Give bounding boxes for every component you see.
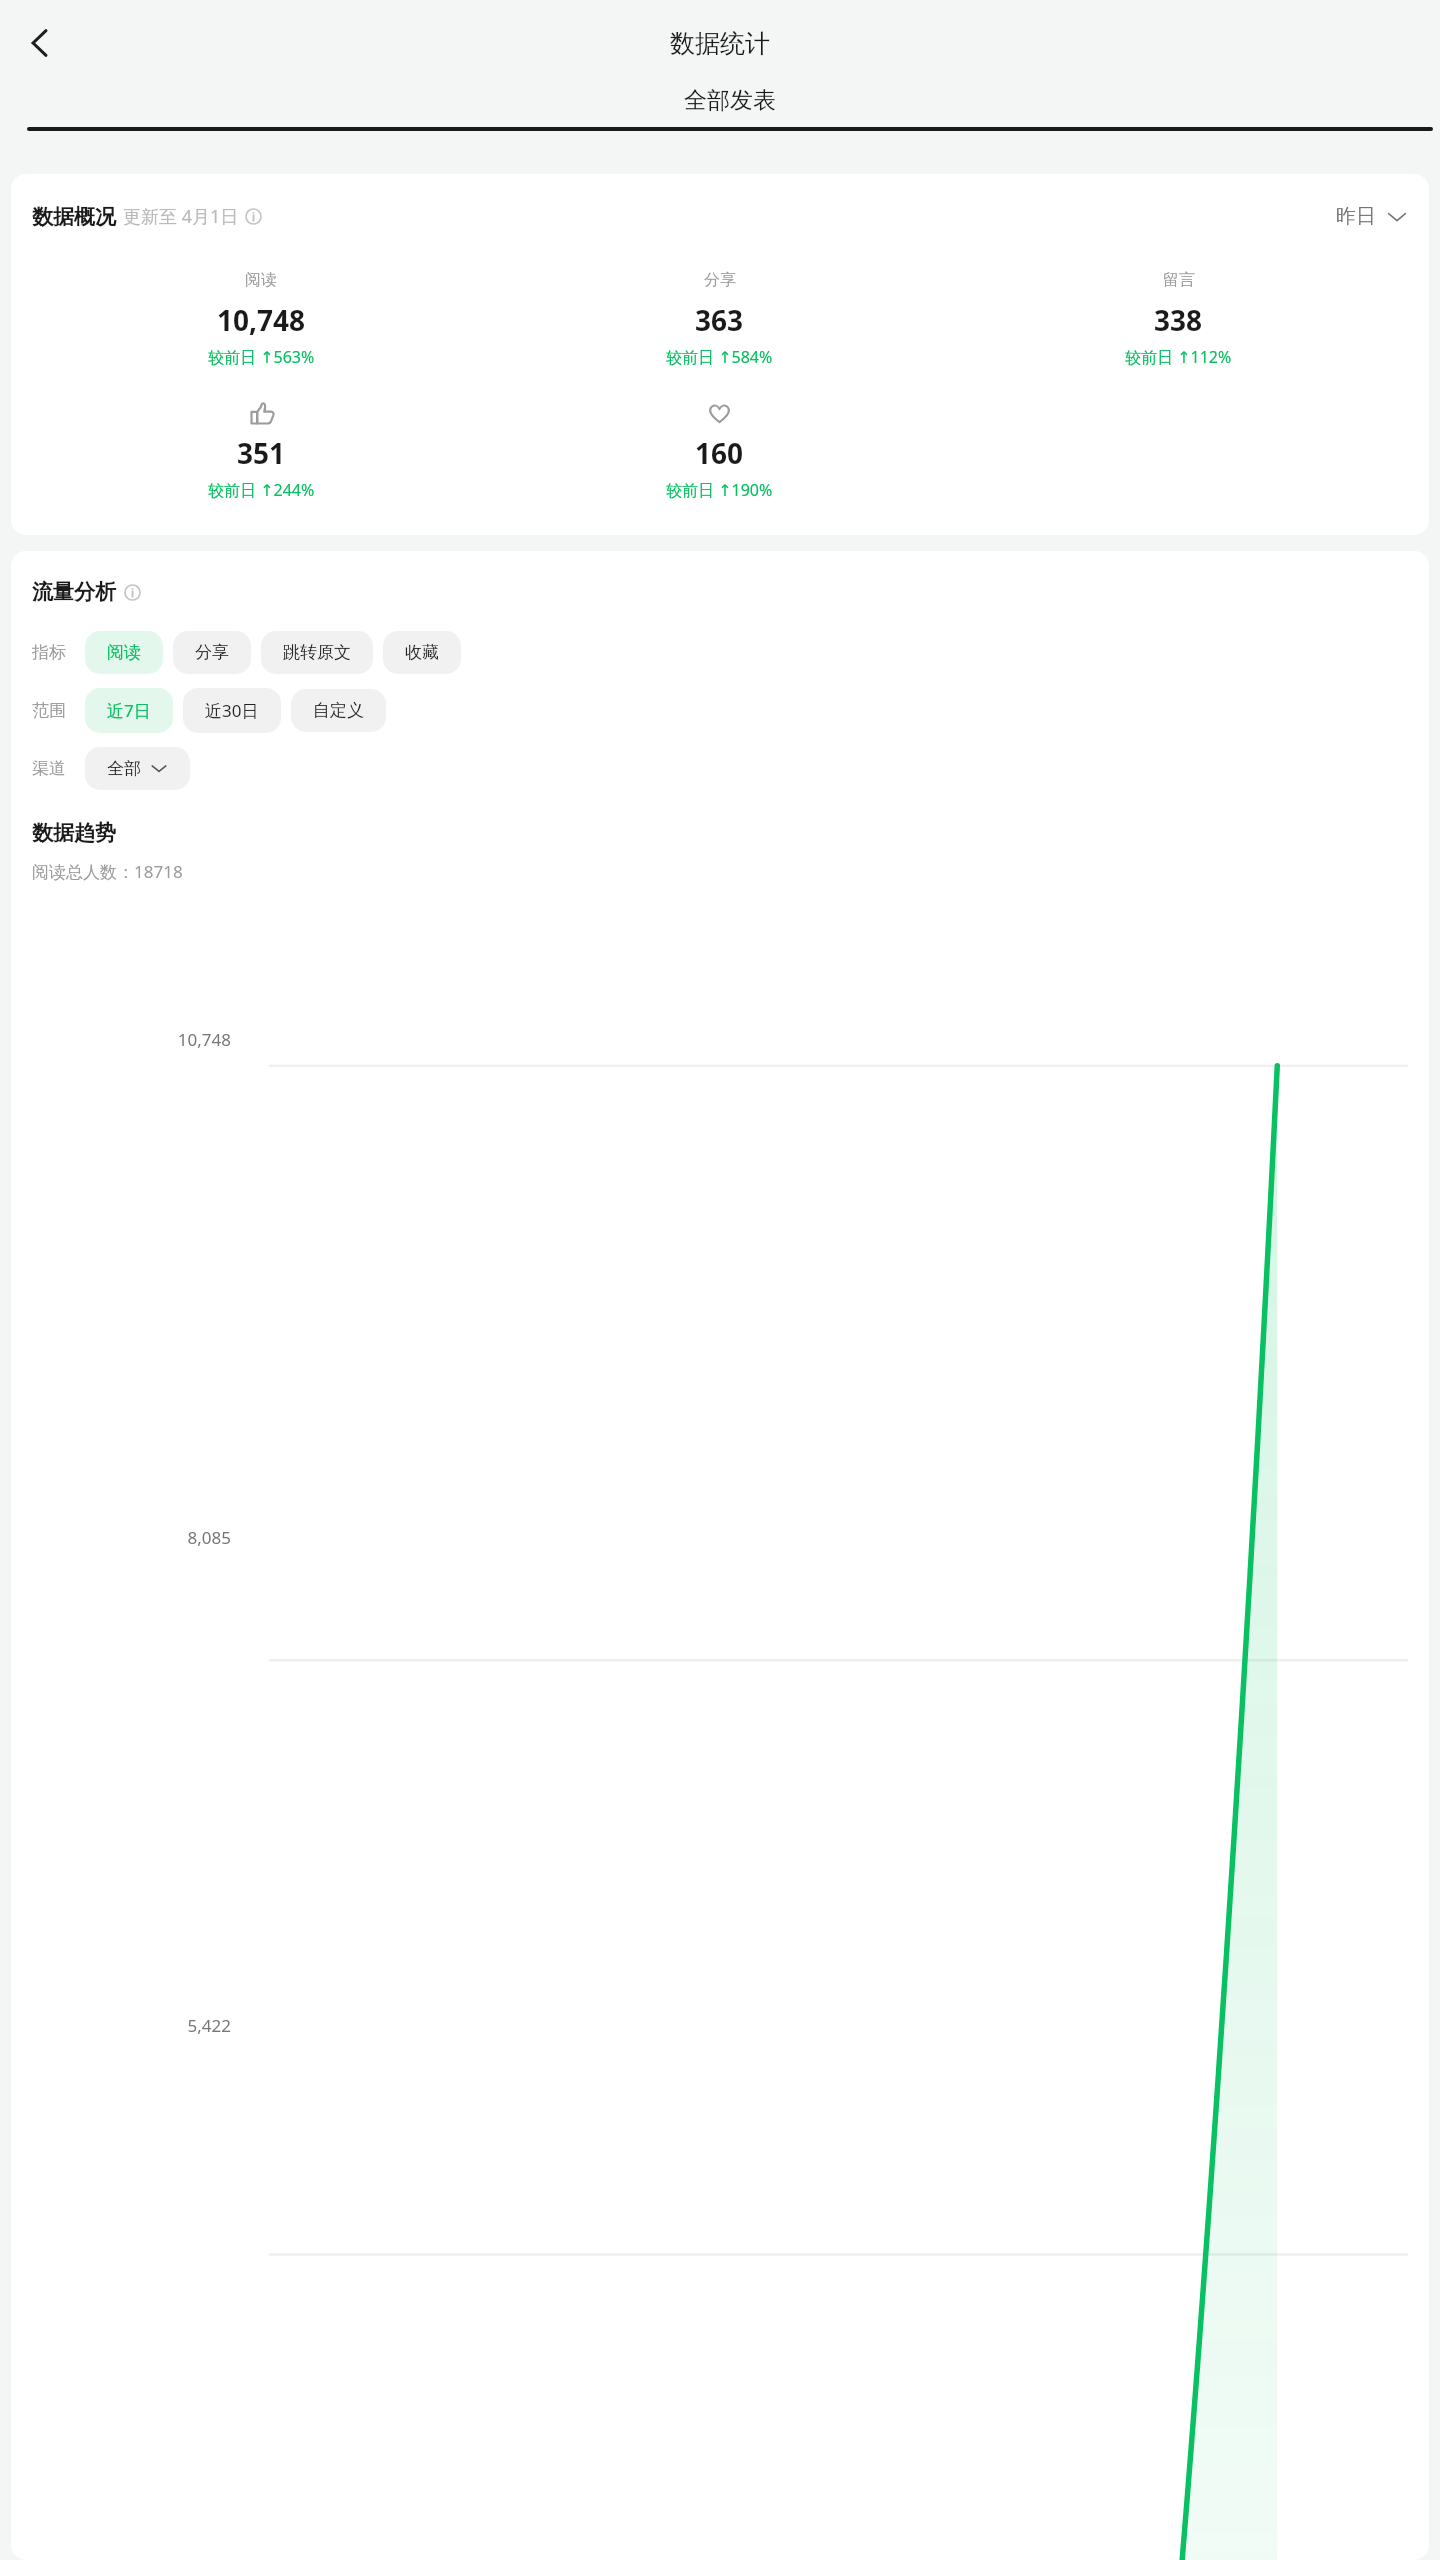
staticText: 昨日 [1336,204,1376,229]
staticText: 数据概况 [32,204,116,230]
staticText: 10,748 [32,1028,231,1051]
button[interactable]: 近30日 [183,688,281,733]
staticText: 流量分析 [32,579,116,605]
staticText: 338 [1154,301,1203,339]
button[interactable]: 分享 [490,265,949,368]
staticText: 较前日 ↑584% [666,346,773,368]
button[interactable]: 全部发表 [20,86,1440,131]
staticText: 全部发表 [684,86,776,115]
staticText: 较前日 ↑563% [208,346,315,368]
staticText: 收藏 [405,642,439,663]
staticText: 范围 [32,700,66,721]
staticText: 数据统计 [670,28,770,59]
staticText: 较前日 ↑112% [1125,346,1232,368]
button[interactable]: 分享 [173,631,251,674]
button[interactable]: 收藏 [383,631,461,674]
staticText: 近30日 [205,699,259,722]
staticText: 指标 [32,642,66,663]
staticText: 较前日 ↑190% [666,479,773,501]
button[interactable]: Back [8,11,72,75]
staticText: 351 [237,434,286,472]
button[interactable]: 阅读 [85,631,163,674]
staticText: 363 [695,301,744,339]
staticText: 阅读 [107,642,141,663]
staticText: 160 [695,434,744,472]
button[interactable]: 160 [490,398,949,501]
staticText: 阅读总人数：18718 [32,860,183,883]
staticText: 数据趋势 [32,820,116,846]
staticText: 分享 [195,642,229,663]
staticText: 全部 [107,758,141,779]
button[interactable]: 阅读 [32,265,490,368]
button[interactable]: 全部 [85,747,190,790]
staticText: 10,748 [217,301,306,339]
staticText: 5,422 [32,2014,231,2037]
staticText: 留言 [1163,270,1195,290]
staticText: 阅读 [245,270,277,290]
staticText: 渠道 [32,758,66,779]
staticText: 8,085 [32,1526,231,1549]
staticText: 近7日 [107,699,151,722]
button[interactable]: 自定义 [291,689,386,732]
staticText: 跳转原文 [283,642,351,663]
button[interactable]: 昨日 [1336,200,1408,233]
button[interactable]: 351 [32,398,490,501]
staticText: 较前日 ↑244% [208,479,315,501]
button[interactable]: 跳转原文 [261,631,373,674]
staticText: 更新至 4月1日 [123,204,239,229]
button[interactable]: 近7日 [85,688,173,733]
button[interactable]: 留言 [949,265,1408,368]
staticText: 分享 [704,270,736,290]
staticText: 自定义 [313,700,364,721]
